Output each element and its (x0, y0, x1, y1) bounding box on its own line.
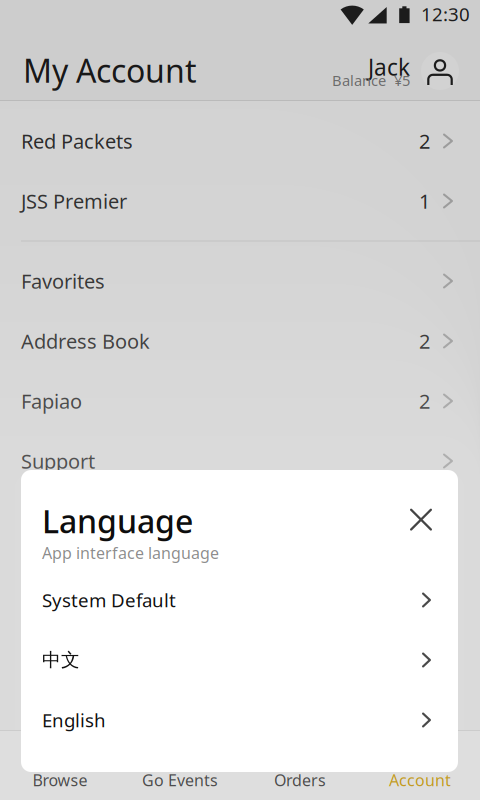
staticText: App interface language (42, 542, 219, 563)
staticText: Address Book (21, 328, 150, 354)
staticText: JSS Premier (21, 188, 127, 214)
staticText: 12:30 (421, 2, 470, 26)
staticText: Fapiao (21, 388, 82, 414)
button[interactable]: Favorites (0, 251, 480, 311)
staticText: Red Packets (21, 128, 133, 154)
button[interactable]: 中文 (21, 630, 458, 690)
staticText: Favorites (21, 268, 105, 294)
staticText: Account (389, 769, 451, 791)
button[interactable]: Support (0, 431, 480, 491)
staticText: Orders (274, 769, 326, 791)
staticText: 中文 (42, 648, 80, 671)
button[interactable]: Account (360, 769, 480, 791)
staticText: My Account (23, 49, 197, 91)
button[interactable]: Close (401, 500, 441, 540)
button[interactable]: Fapiao (0, 371, 480, 431)
staticText: Jack (368, 52, 410, 82)
staticText: Support (21, 448, 95, 474)
button[interactable]: Orders (240, 769, 360, 791)
button[interactable]: System Default (21, 570, 458, 630)
staticText: English (42, 708, 106, 732)
staticText: 1 (419, 188, 430, 214)
staticText: Balance ¥5 (332, 70, 410, 90)
staticText: 2 (419, 328, 430, 354)
staticText: Language (42, 500, 193, 542)
staticText: Go Events (142, 769, 218, 791)
button[interactable]: English (21, 690, 458, 750)
button[interactable]: Red Packets (0, 111, 480, 171)
staticText: 2 (419, 388, 430, 414)
button[interactable]: JSS Premier (0, 171, 480, 231)
button[interactable]: Address Book (0, 311, 480, 371)
button[interactable]: Go Events (120, 769, 240, 791)
staticText: System Default (42, 588, 176, 612)
staticText: Browse (32, 769, 87, 791)
button[interactable]: Profile (421, 52, 459, 90)
staticText: 2 (419, 128, 430, 154)
button[interactable]: Browse (0, 769, 120, 791)
